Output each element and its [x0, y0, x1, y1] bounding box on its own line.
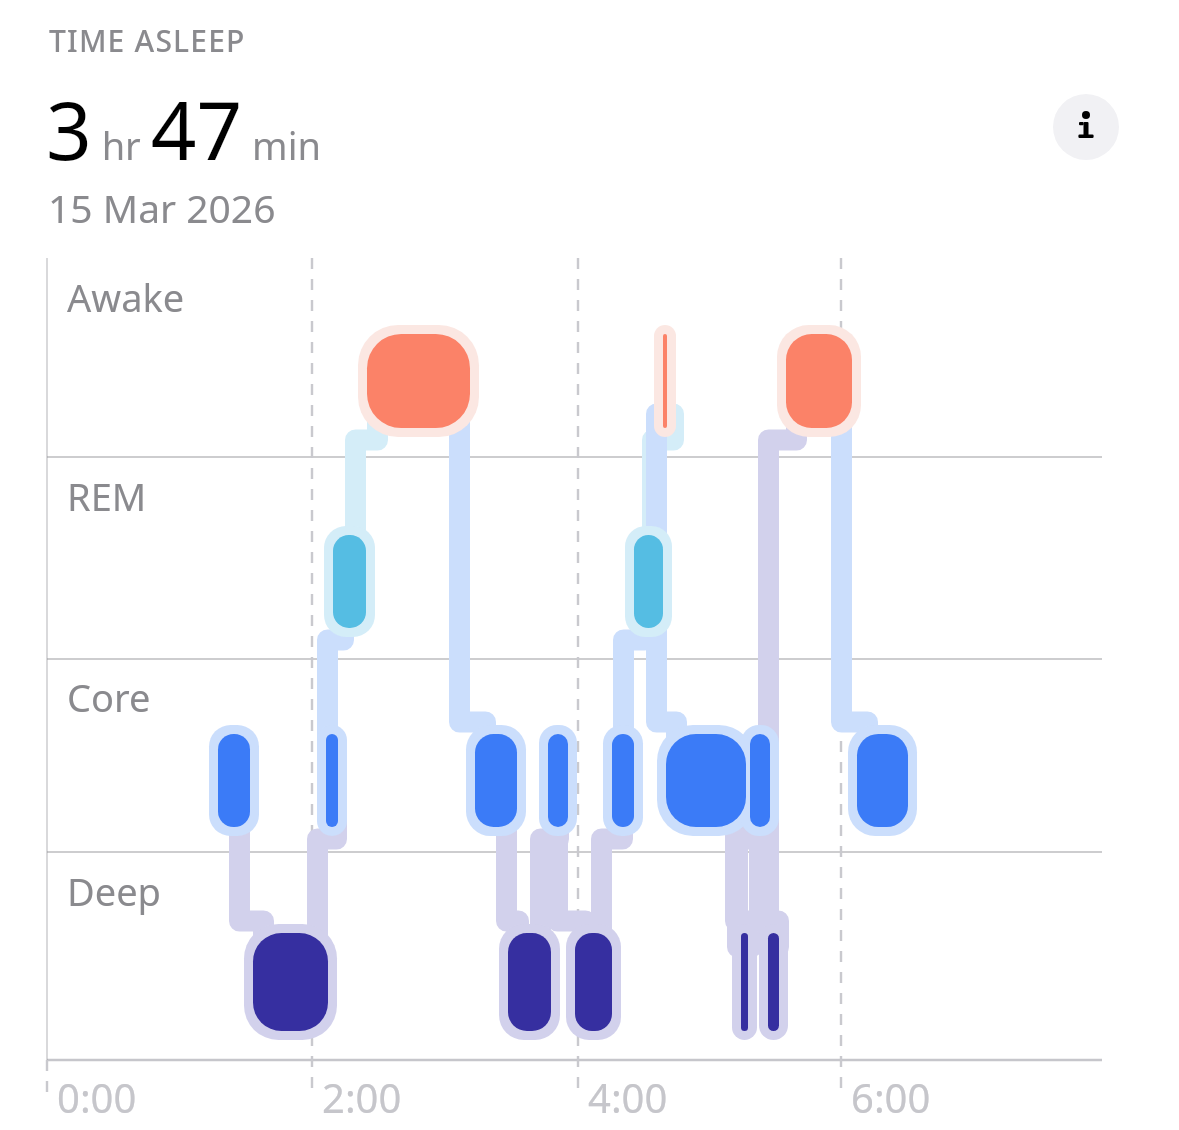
staticText: Core	[67, 671, 151, 723]
staticText: TIME ASLEEP	[49, 20, 246, 61]
staticText: Awake	[67, 271, 185, 323]
button[interactable]: About time asleep	[1053, 94, 1119, 160]
staticText: 2:00	[322, 1070, 402, 1124]
staticText: 15 Mar 2026	[48, 181, 276, 234]
staticText: 4:00	[588, 1070, 668, 1124]
staticText: REM	[67, 470, 147, 522]
staticText: Deep	[67, 865, 161, 917]
staticText: 6:00	[851, 1070, 931, 1124]
staticText: 3 hr 47 min	[46, 74, 321, 183]
staticText: 0:00	[57, 1070, 137, 1124]
